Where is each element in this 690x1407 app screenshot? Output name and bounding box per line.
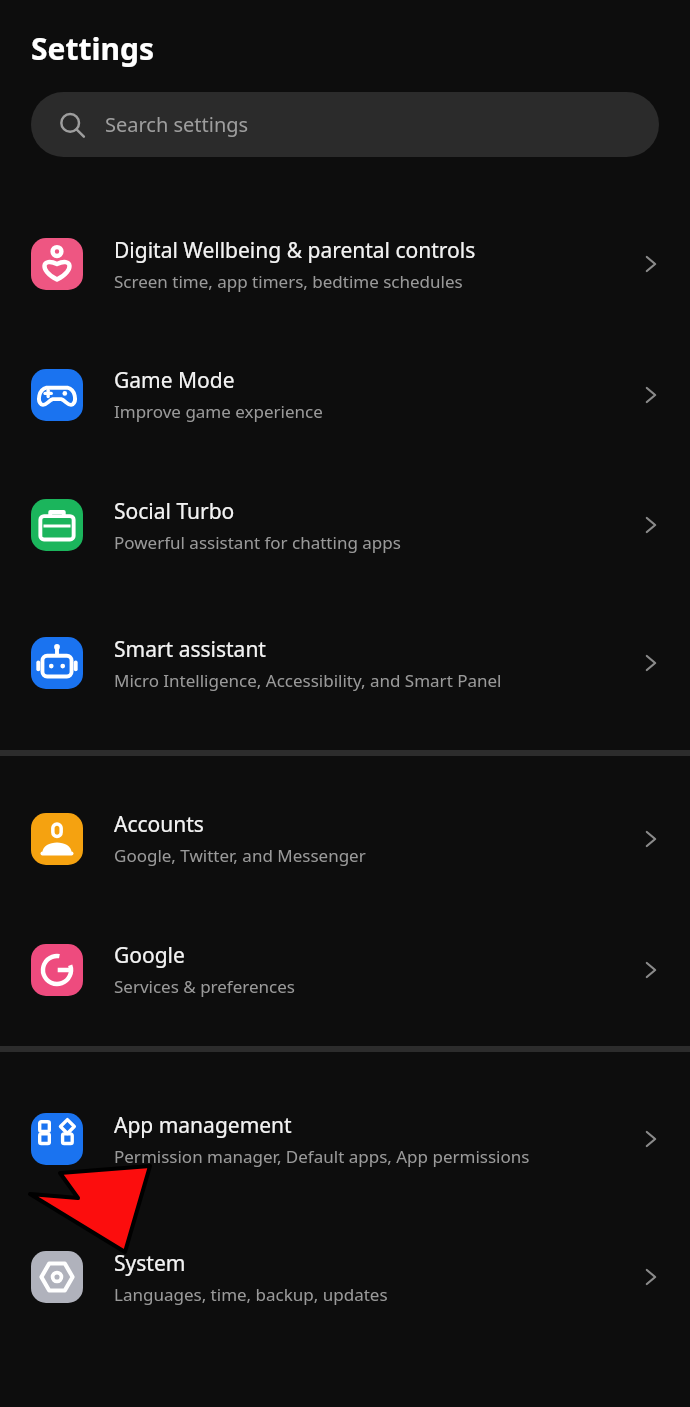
staticText: Permission manager, Default apps, App pe… bbox=[114, 1145, 530, 1168]
button[interactable]: Google bbox=[0, 904, 690, 1035]
staticText: Settings bbox=[31, 28, 154, 69]
staticText: App management bbox=[114, 1111, 292, 1140]
button[interactable]: Game Mode bbox=[0, 329, 690, 460]
staticText: Google bbox=[114, 941, 185, 970]
staticText: Search settings bbox=[105, 111, 249, 138]
button[interactable]: System bbox=[0, 1212, 690, 1342]
staticText: Digital Wellbeing & parental controls bbox=[114, 236, 476, 265]
button[interactable]: Accounts bbox=[0, 773, 690, 904]
staticText: Services & preferences bbox=[114, 975, 295, 998]
staticText: Google, Twitter, and Messenger bbox=[114, 844, 366, 867]
staticText: Social Turbo bbox=[114, 497, 235, 526]
button[interactable]: App management bbox=[0, 1066, 690, 1212]
staticText: Smart assistant bbox=[114, 635, 266, 664]
staticText: Game Mode bbox=[114, 366, 235, 395]
button[interactable]: Social Turbo bbox=[0, 460, 690, 590]
staticText: Powerful assistant for chatting apps bbox=[114, 531, 401, 554]
staticText: Screen time, app timers, bedtime schedul… bbox=[114, 270, 463, 293]
button[interactable]: Digital Wellbeing & parental controls bbox=[0, 199, 690, 329]
staticText: Languages, time, backup, updates bbox=[114, 1283, 388, 1306]
staticText: System bbox=[114, 1249, 186, 1278]
staticText: Accounts bbox=[114, 810, 204, 839]
button[interactable]: Smart assistant bbox=[0, 590, 690, 736]
staticText: Micro Intelligence, Accessibility, and S… bbox=[114, 669, 502, 692]
staticText: Improve game experience bbox=[114, 400, 323, 423]
button[interactable]: Search settings bbox=[31, 92, 659, 157]
